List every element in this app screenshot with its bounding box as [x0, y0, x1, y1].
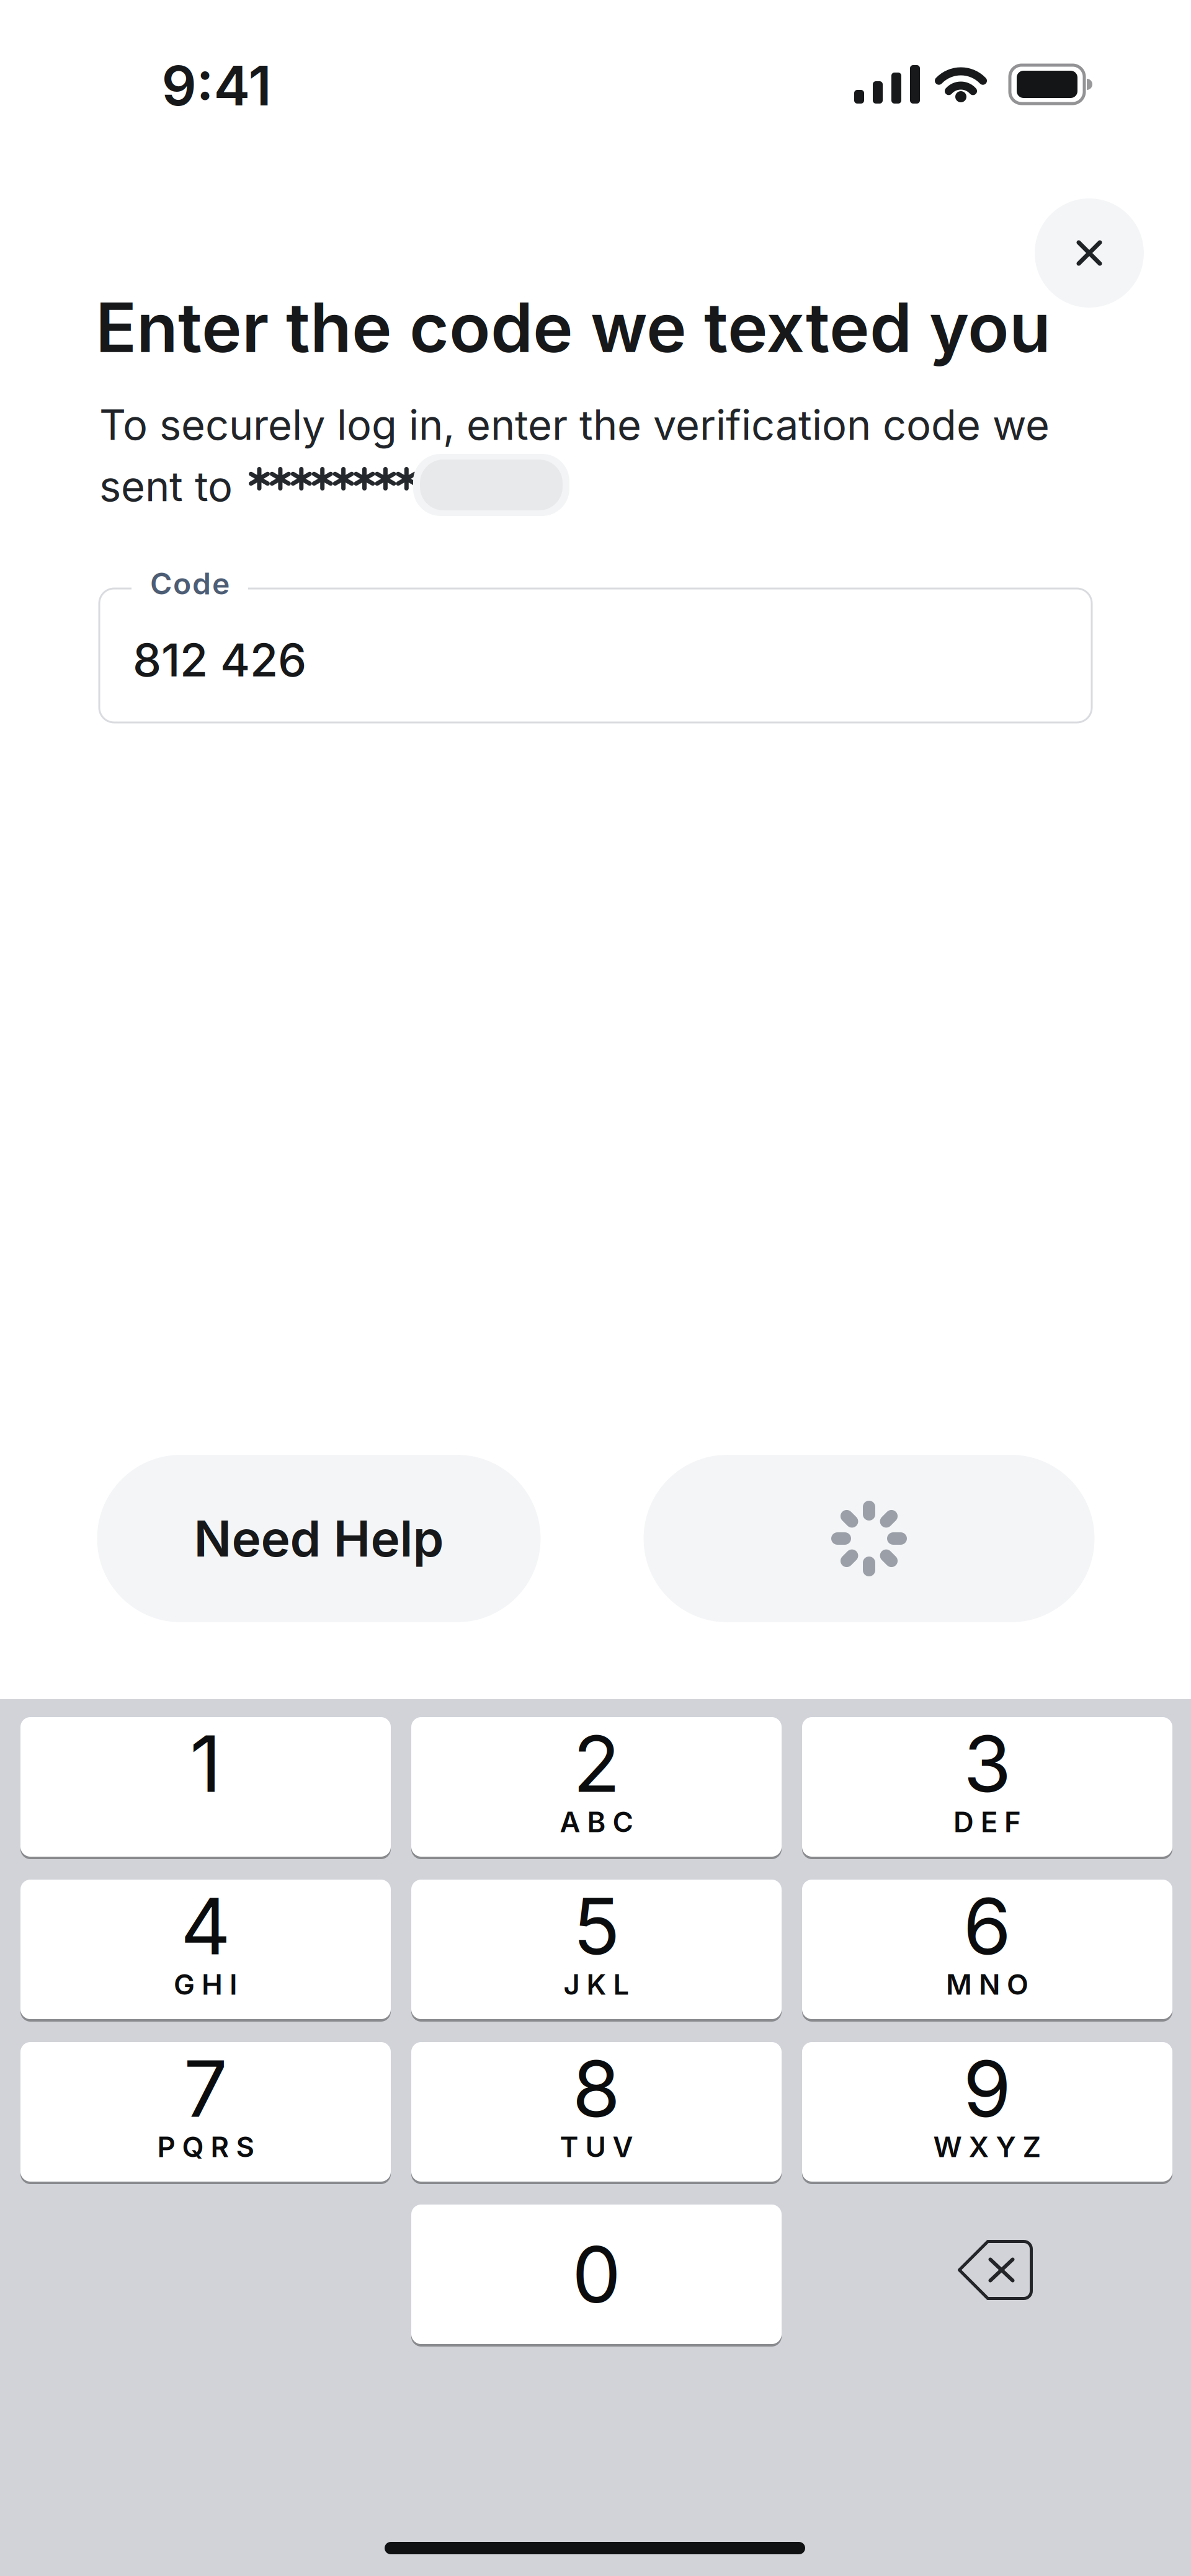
button[interactable]: 6	[802, 1880, 1172, 2019]
staticText: 7	[184, 2043, 228, 2134]
staticText: J K L	[564, 1968, 629, 2001]
button[interactable]: Need Help	[97, 1455, 541, 1622]
button[interactable]: 5	[411, 1880, 782, 2019]
staticText: 0	[572, 2228, 621, 2320]
staticText: Code	[150, 566, 230, 601]
staticText: Need Help	[194, 1509, 444, 1568]
staticText: Enter the code we texted you	[96, 287, 1051, 367]
staticText: 9:41	[162, 53, 271, 118]
staticText: D E F	[953, 1805, 1021, 1839]
staticText: T U V	[560, 2130, 633, 2163]
staticText: A B C	[560, 1805, 633, 1839]
staticText: 4	[181, 1880, 231, 1972]
button[interactable]: 7	[20, 2042, 391, 2182]
staticText: 1	[190, 1718, 221, 1810]
button[interactable]: Close	[1035, 198, 1144, 308]
button[interactable]: Delete	[959, 2241, 1031, 2299]
staticText: To securely log in, enter the verificati…	[99, 400, 1050, 449]
staticText: M N O	[946, 1968, 1028, 2001]
staticText: 3	[963, 1718, 1011, 1810]
staticText: 2	[573, 1718, 620, 1810]
staticText: G H I	[174, 1968, 238, 2001]
staticText: W X Y Z	[933, 2130, 1041, 2163]
button[interactable]: 3	[802, 1717, 1172, 1857]
button[interactable]: 9	[802, 2042, 1172, 2182]
staticText: 6	[963, 1880, 1011, 1972]
staticText: 9	[963, 2043, 1011, 2134]
staticText: 5	[573, 1880, 620, 1972]
button[interactable]: 2	[411, 1717, 782, 1857]
button[interactable]: 0	[411, 2205, 782, 2344]
staticText: P Q R S	[157, 2130, 254, 2163]
staticText: 8	[572, 2043, 621, 2134]
button[interactable]: 4	[20, 1880, 391, 2019]
staticText: sent to	[99, 462, 233, 511]
button[interactable]: 1	[20, 1717, 391, 1857]
staticText: 812 426	[133, 633, 306, 687]
button[interactable]: Loading	[644, 1455, 1095, 1622]
button[interactable]: 8	[411, 2042, 782, 2182]
